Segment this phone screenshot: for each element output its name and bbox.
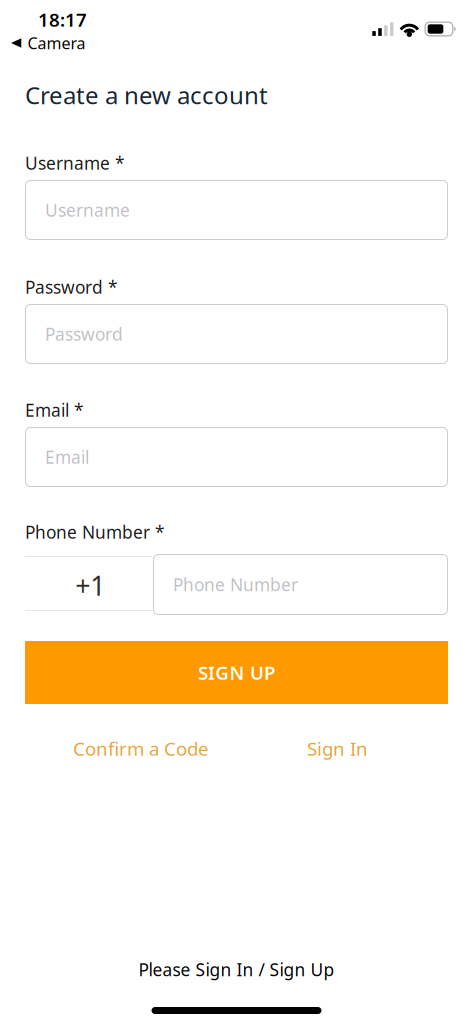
button[interactable]: Sign In	[307, 739, 368, 758]
staticText: Create a new account	[25, 79, 268, 111]
staticText: Password	[45, 322, 123, 345]
button[interactable]: SIGN UP	[25, 641, 448, 704]
button[interactable]: Username	[25, 180, 448, 240]
staticText: +1	[75, 568, 105, 603]
staticText: Username	[45, 198, 130, 221]
button[interactable]: Password	[25, 304, 448, 364]
staticText: Please Sign In / Sign Up	[138, 958, 334, 981]
button[interactable]: Camera	[0, 28, 86, 50]
staticText: Email	[45, 445, 89, 468]
button[interactable]: Confirm a Code	[73, 739, 209, 758]
staticText: Phone Number *	[25, 520, 165, 543]
staticText: 18:17	[38, 7, 87, 32]
staticText: Confirm a Code	[73, 736, 209, 761]
staticText: Password *	[25, 275, 118, 298]
staticText: Email *	[25, 398, 84, 421]
button[interactable]: Email	[25, 427, 448, 487]
staticText: Camera	[28, 32, 86, 54]
button[interactable]: Phone Number	[153, 554, 448, 615]
staticText: Sign In	[307, 736, 368, 761]
staticText: Username *	[25, 151, 125, 174]
staticText: Phone Number	[173, 573, 298, 596]
button[interactable]: Country code, plus 1	[25, 556, 152, 611]
staticText: SIGN UP	[198, 660, 275, 685]
